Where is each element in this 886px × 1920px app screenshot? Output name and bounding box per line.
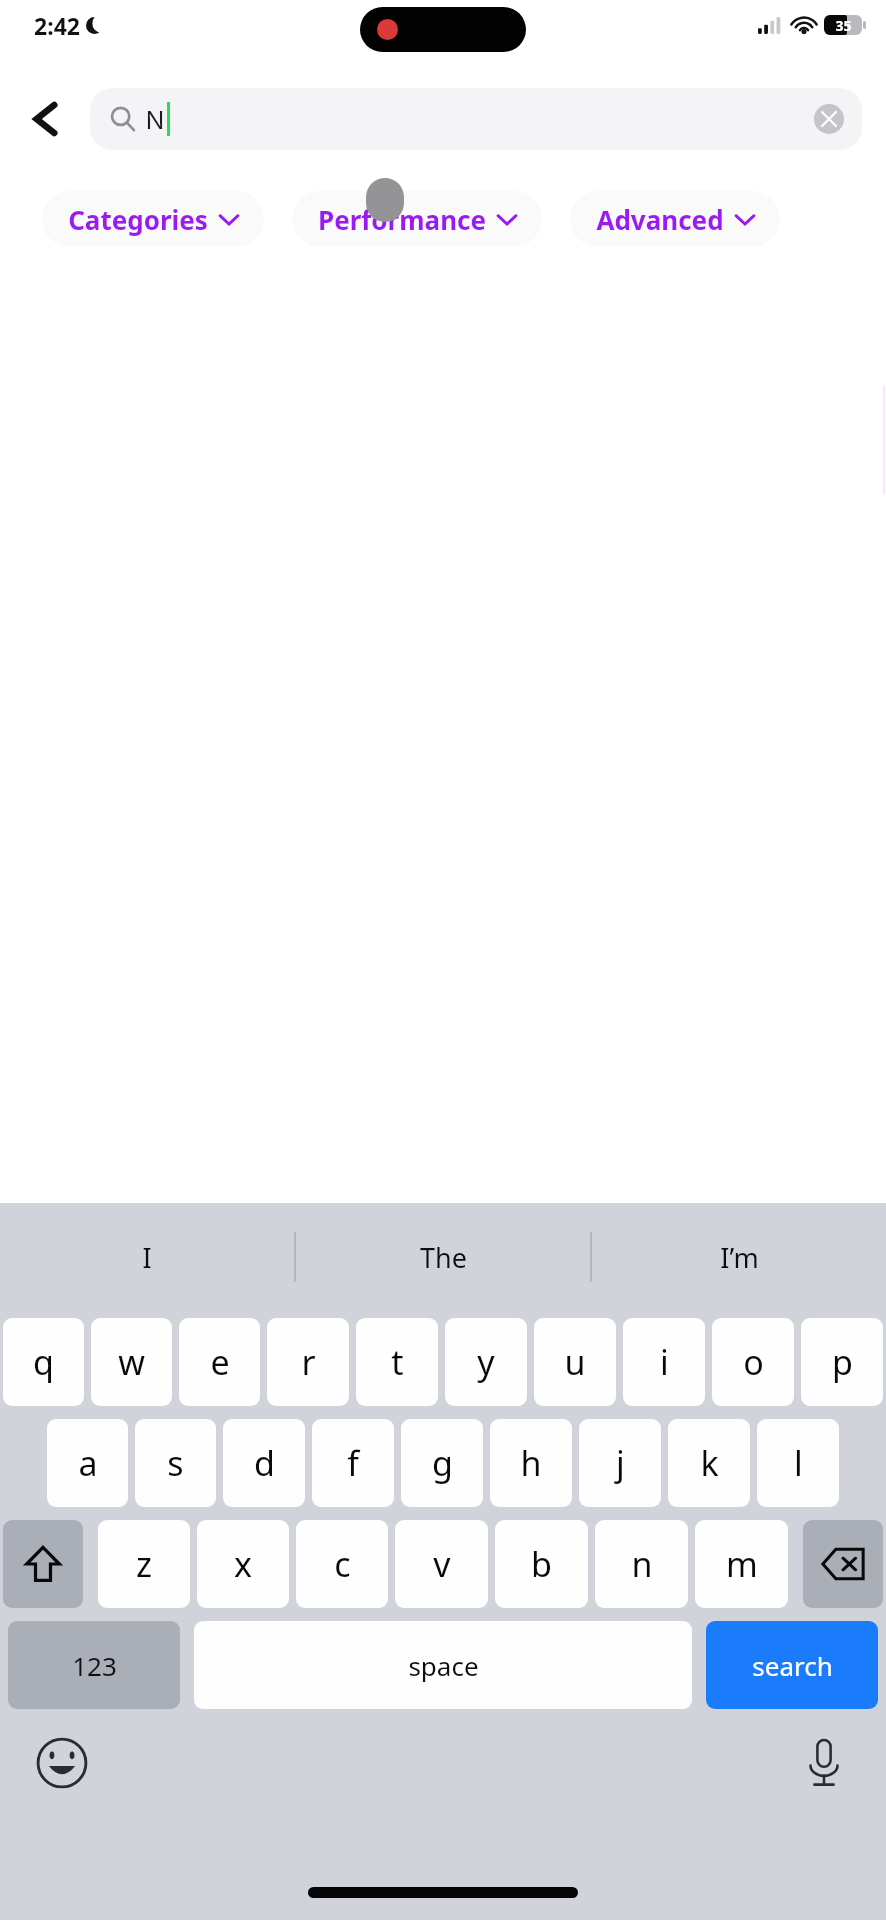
staticText: m xyxy=(726,1541,758,1587)
staticText: 123 xyxy=(72,1648,117,1683)
staticText: e xyxy=(210,1339,230,1385)
staticText: g xyxy=(432,1440,453,1486)
staticText: y xyxy=(477,1339,495,1385)
staticText: f xyxy=(347,1440,359,1486)
staticText: r xyxy=(301,1339,316,1385)
staticText: 35 xyxy=(835,16,852,35)
button[interactable]: p xyxy=(801,1318,883,1406)
button[interactable]: g xyxy=(401,1419,483,1507)
staticText: i xyxy=(660,1339,669,1385)
button[interactable]: k xyxy=(668,1419,750,1507)
button[interactable]: e xyxy=(179,1318,260,1406)
staticText: t xyxy=(391,1339,404,1385)
button[interactable]: i xyxy=(623,1318,705,1406)
staticText: Advanced xyxy=(596,202,724,237)
button[interactable]: z xyxy=(98,1520,190,1608)
button[interactable]: v xyxy=(395,1520,488,1608)
staticText: p xyxy=(832,1339,853,1385)
button[interactable]: f xyxy=(312,1419,394,1507)
staticText: l xyxy=(794,1440,803,1486)
button[interactable]: search xyxy=(706,1621,878,1709)
button[interactable]: Back xyxy=(0,88,90,150)
button[interactable]: c xyxy=(296,1520,388,1608)
staticText: Categories xyxy=(68,202,208,237)
button[interactable]: j xyxy=(579,1419,661,1507)
staticText: n xyxy=(631,1541,653,1587)
button[interactable]: I xyxy=(0,1203,294,1311)
button[interactable]: Dictation xyxy=(794,1733,854,1793)
staticText: b xyxy=(531,1541,552,1587)
staticText: c xyxy=(334,1541,351,1587)
button[interactable]: Clear text xyxy=(814,104,844,134)
staticText: o xyxy=(743,1339,764,1385)
button[interactable]: n xyxy=(595,1520,688,1608)
button[interactable]: Backspace xyxy=(803,1520,883,1608)
staticText: 2:42 xyxy=(34,10,80,41)
staticText: u xyxy=(564,1339,586,1385)
staticText: The xyxy=(420,1239,467,1276)
staticText: s xyxy=(167,1440,184,1486)
staticText: h xyxy=(520,1440,542,1486)
staticText: z xyxy=(136,1541,152,1587)
staticText: q xyxy=(33,1339,54,1385)
button[interactable]: q xyxy=(3,1318,84,1406)
button[interactable]: I’m xyxy=(592,1203,886,1311)
button[interactable]: Performance xyxy=(292,191,542,247)
staticText: Performance xyxy=(318,202,486,237)
button[interactable]: The xyxy=(296,1203,590,1311)
button[interactable]: s xyxy=(135,1419,216,1507)
staticText: space xyxy=(408,1648,479,1683)
staticText: d xyxy=(254,1440,275,1486)
staticText: I xyxy=(142,1239,152,1276)
button[interactable]: m xyxy=(695,1520,788,1608)
button[interactable]: r xyxy=(267,1318,349,1406)
button[interactable]: 123 xyxy=(8,1621,180,1709)
staticText: j xyxy=(616,1440,625,1486)
staticText: k xyxy=(700,1440,719,1486)
button[interactable]: space xyxy=(194,1621,692,1709)
button[interactable]: Shift xyxy=(3,1520,83,1608)
staticText: a xyxy=(78,1440,98,1486)
button[interactable]: a xyxy=(47,1419,128,1507)
staticText: N xyxy=(145,102,165,136)
button[interactable]: w xyxy=(91,1318,172,1406)
button[interactable]: b xyxy=(495,1520,588,1608)
button[interactable]: o xyxy=(712,1318,794,1406)
button[interactable]: y xyxy=(445,1318,527,1406)
staticText: w xyxy=(118,1339,145,1385)
button[interactable]: l xyxy=(757,1419,839,1507)
button[interactable]: t xyxy=(356,1318,438,1406)
staticText: x xyxy=(234,1541,252,1587)
button[interactable]: Categories xyxy=(42,191,264,247)
button[interactable]: Advanced xyxy=(570,191,780,247)
button[interactable]: d xyxy=(223,1419,305,1507)
button[interactable]: h xyxy=(490,1419,572,1507)
button[interactable]: u xyxy=(534,1318,616,1406)
staticText: I’m xyxy=(720,1239,759,1276)
button[interactable]: x xyxy=(197,1520,289,1608)
button[interactable]: Emoji xyxy=(32,1733,92,1793)
staticText: v xyxy=(433,1541,451,1587)
button[interactable]: N xyxy=(90,88,862,150)
staticText: search xyxy=(752,1648,833,1683)
